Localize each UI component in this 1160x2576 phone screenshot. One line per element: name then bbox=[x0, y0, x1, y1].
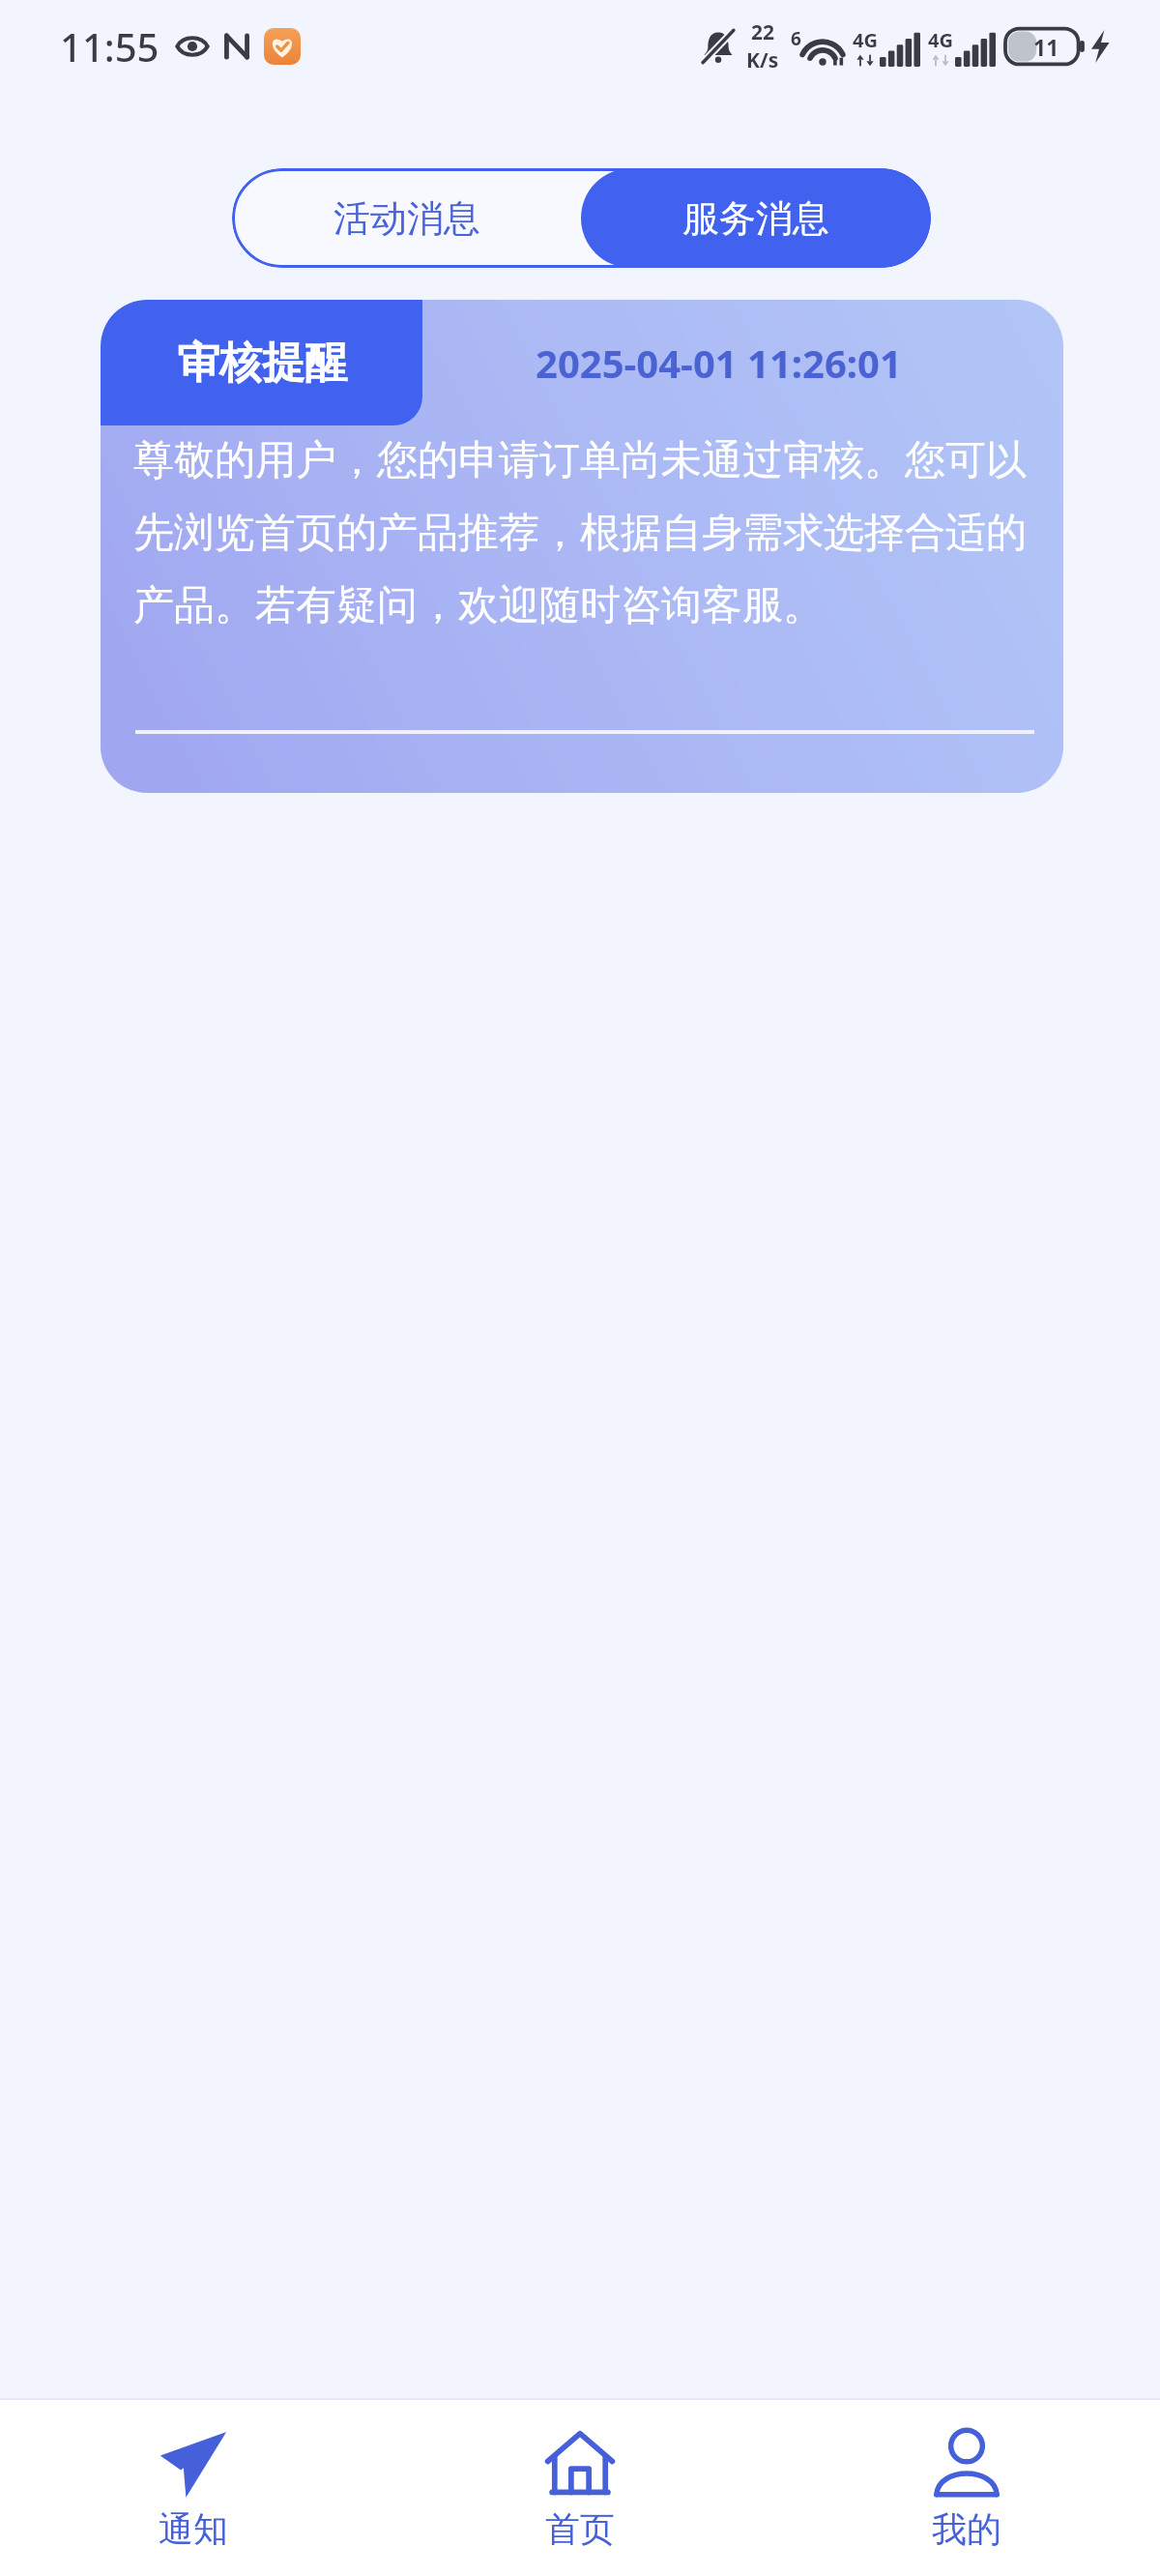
staticText: 首页 bbox=[545, 2507, 615, 2551]
staticText: 4G bbox=[928, 27, 953, 53]
staticText: 活动消息 bbox=[333, 195, 480, 242]
staticText: 11 bbox=[1033, 32, 1059, 62]
staticText: 通知 bbox=[159, 2507, 228, 2551]
button[interactable]: 我的 bbox=[773, 2400, 1160, 2576]
staticText: 22 bbox=[751, 18, 775, 46]
staticText: K/s bbox=[746, 46, 779, 74]
staticText: 我的 bbox=[932, 2507, 1001, 2551]
staticText: 6 bbox=[791, 26, 801, 51]
button[interactable]: 审核提醒 bbox=[101, 300, 1063, 793]
button[interactable]: 通知 bbox=[0, 2400, 387, 2576]
staticText: 尊敬的用户，您的申请订单尚未通过审核。您可以先浏览首页的产品推荐，根据自身需求选… bbox=[133, 435, 1034, 630]
staticText: 11:55 bbox=[60, 20, 159, 73]
staticText: 审核提醒 bbox=[177, 337, 347, 390]
button[interactable]: 活动消息 bbox=[232, 168, 581, 268]
staticText: 2025-04-01 11:26:01 bbox=[536, 337, 902, 389]
staticText: 服务消息 bbox=[682, 195, 829, 242]
button[interactable]: 首页 bbox=[387, 2400, 773, 2576]
button[interactable]: 服务消息 bbox=[581, 168, 931, 268]
staticText: 4G bbox=[853, 27, 878, 53]
